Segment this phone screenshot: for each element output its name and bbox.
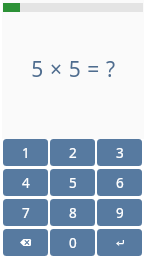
staticText: 6 [116,174,124,192]
button[interactable]: 9 [97,199,142,226]
staticText: 9 [116,204,124,222]
button[interactable]: 6 [97,169,142,196]
button[interactable]: Enter [97,229,142,256]
button[interactable]: 4 [3,169,48,196]
button[interactable]: 3 [97,139,142,166]
button[interactable]: 7 [3,199,48,226]
staticText: 5 × 5 = ? [31,55,116,84]
staticText: 1 [22,144,30,162]
button[interactable]: 0 [50,229,95,256]
staticText: 5 [69,174,77,192]
button[interactable]: 1 [3,139,48,166]
staticText: 0 [69,234,77,252]
staticText: 4 [22,174,30,192]
staticText: 2 [69,144,77,162]
button[interactable]: 2 [50,139,95,166]
button[interactable]: 8 [50,199,95,226]
staticText: 8 [69,204,77,222]
button[interactable]: Backspace [3,229,48,256]
other: Backspace [20,239,31,246]
button[interactable]: 5 [50,169,95,196]
other: Enter [116,240,124,246]
staticText: 7 [22,204,30,222]
staticText: 3 [116,144,124,162]
